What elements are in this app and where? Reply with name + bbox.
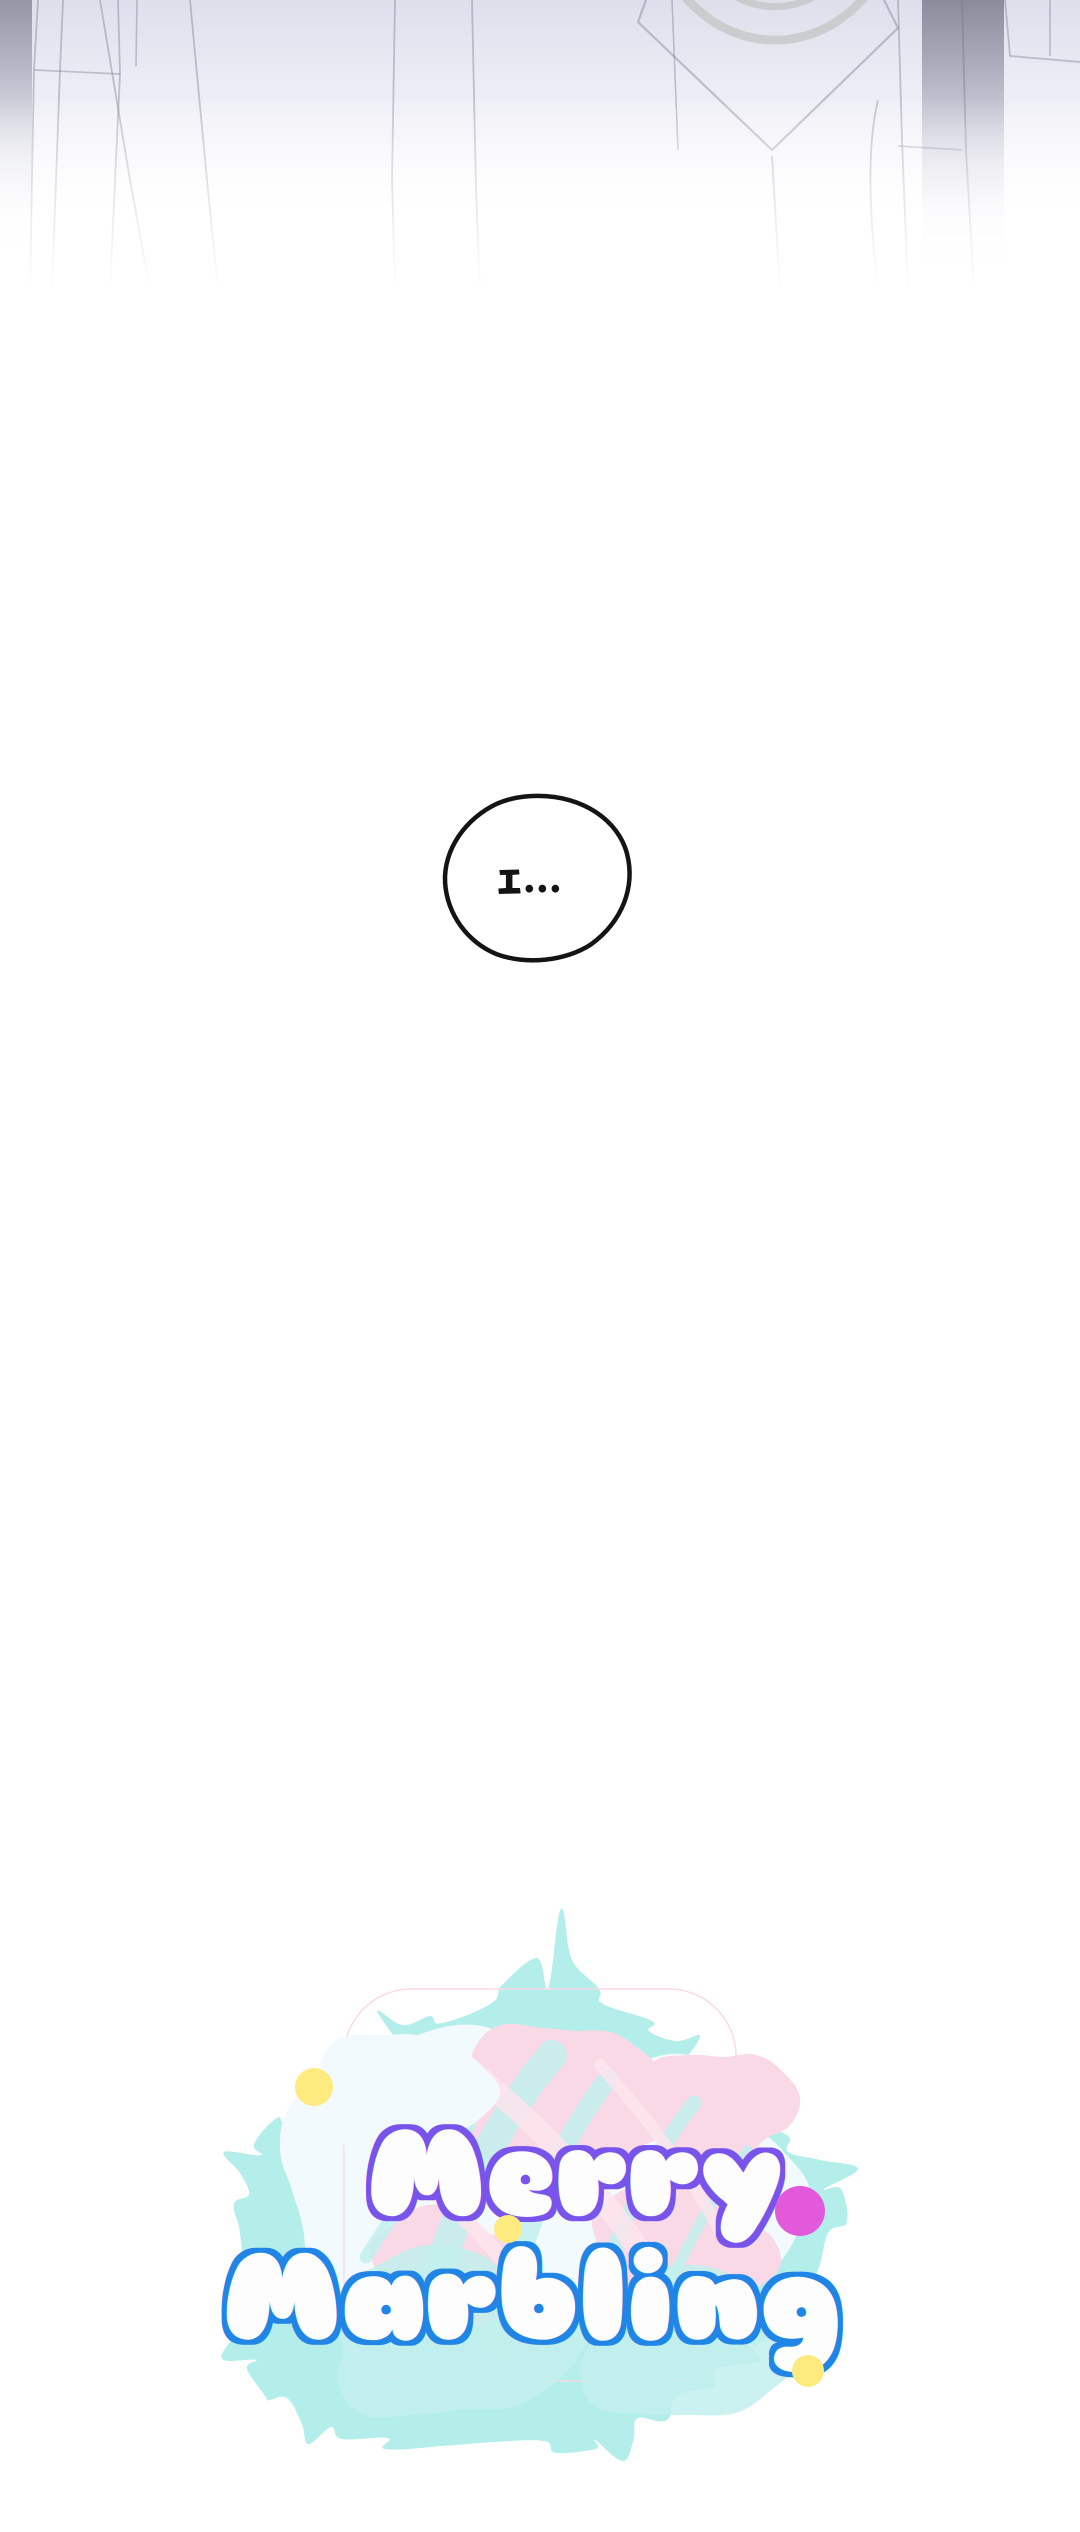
staticText: Merry: [367, 2096, 784, 2245]
staticText: Marbling: [218, 2224, 836, 2373]
staticText: Marbling: [218, 2229, 836, 2378]
staticText: Marbling: [223, 2229, 841, 2378]
staticText: Merry: [367, 2106, 784, 2255]
staticText: Merry: [372, 2106, 789, 2255]
staticText: Merry: [372, 2096, 789, 2245]
staticText: Marbling: [228, 2224, 846, 2373]
staticText: Marbling: [228, 2219, 846, 2368]
staticText: Marbling: [218, 2219, 836, 2368]
staticText: Marbling: [228, 2229, 846, 2378]
staticText: Marbling: [223, 2224, 841, 2373]
staticText: Merry: [362, 2106, 779, 2255]
staticText: Merry: [362, 2101, 779, 2250]
staticText: Marbling: [223, 2219, 841, 2368]
staticText: Merry: [362, 2096, 779, 2245]
staticText: Merry: [372, 2101, 789, 2250]
staticText: Merry: [367, 2101, 784, 2250]
